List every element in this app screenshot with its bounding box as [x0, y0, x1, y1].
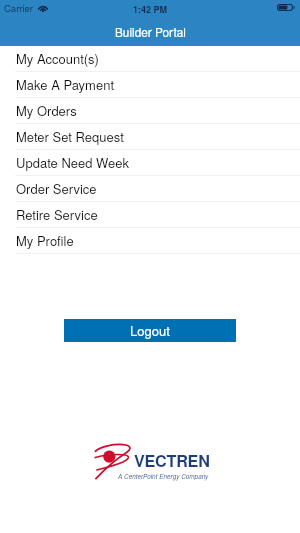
button[interactable]: Meter Set Request [0, 124, 300, 150]
staticText: My Account(s) [16, 49, 99, 68]
button[interactable]: My Orders [0, 98, 300, 124]
staticText: My Profile [16, 231, 74, 250]
staticText: Builder Portal [115, 23, 186, 40]
button[interactable]: My Profile [0, 228, 300, 254]
staticText: 1:42 PM [133, 3, 168, 16]
staticText: Update Need Week [16, 153, 129, 172]
button[interactable]: Order Service [0, 176, 300, 202]
button[interactable]: My Account(s) [0, 46, 300, 72]
other: Wi-Fi signal [38, 5, 48, 12]
staticText: Make A Payment [16, 75, 115, 94]
button[interactable]: Update Need Week [0, 150, 300, 176]
staticText: VECTREN [134, 449, 210, 472]
staticText: Logout [130, 321, 170, 340]
staticText: A CenterPoint Energy Company [118, 472, 209, 481]
other: Battery [277, 4, 295, 11]
staticText: Meter Set Request [16, 127, 124, 146]
staticText: Order Service [16, 179, 97, 198]
staticText: My Orders [16, 101, 77, 120]
staticText: Retire Service [16, 205, 98, 224]
staticText: Carrier [4, 1, 34, 15]
button[interactable]: Logout [64, 319, 236, 342]
button[interactable]: Make A Payment [0, 72, 300, 98]
button[interactable]: Retire Service [0, 202, 300, 228]
